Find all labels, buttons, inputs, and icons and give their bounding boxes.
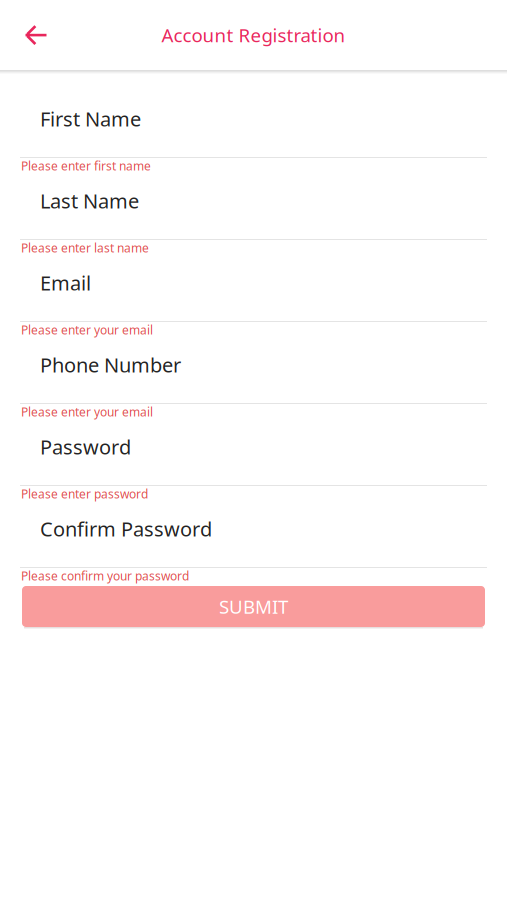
staticText: Email <box>40 269 91 296</box>
button[interactable]: SUBMIT <box>22 586 485 629</box>
button[interactable]: Back <box>14 13 58 57</box>
staticText: Password <box>40 433 131 460</box>
staticText: Please enter your email <box>21 322 153 338</box>
button[interactable]: Phone Number <box>0 339 507 403</box>
staticText: Please enter your email <box>21 404 153 420</box>
button[interactable]: Confirm Password <box>0 503 507 567</box>
button[interactable]: Email <box>0 257 507 321</box>
staticText: First Name <box>40 105 141 132</box>
staticText: Please enter password <box>21 486 148 502</box>
staticText: Please enter first name <box>21 158 151 174</box>
staticText: SUBMIT <box>219 594 288 619</box>
button[interactable]: Password <box>0 421 507 485</box>
staticText: Please enter last name <box>21 240 149 256</box>
button[interactable]: Last Name <box>0 175 507 239</box>
staticText: Confirm Password <box>40 515 212 542</box>
button[interactable]: First Name <box>0 74 507 157</box>
staticText: Account Registration <box>161 23 345 47</box>
staticText: Please confirm your password <box>21 568 189 584</box>
staticText: Last Name <box>40 187 139 214</box>
staticText: Phone Number <box>40 351 181 378</box>
